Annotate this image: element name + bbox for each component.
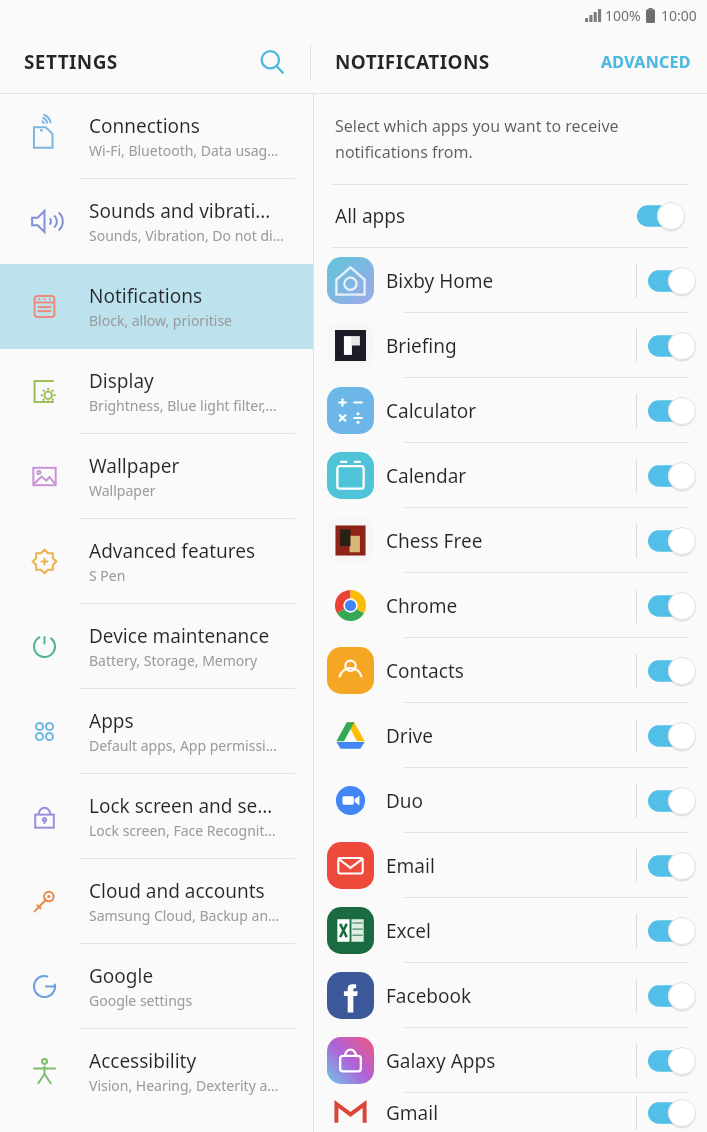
staticText: Calculator <box>386 398 636 424</box>
button[interactable]: Facebook <box>314 963 707 1028</box>
button[interactable]: Google <box>0 944 313 1029</box>
staticText: ADVANCED <box>601 51 691 73</box>
button[interactable]: Toggle notification <box>648 527 696 555</box>
button[interactable]: Toggle notification <box>648 592 696 620</box>
button[interactable]: Toggle notification <box>648 397 696 425</box>
staticText: Calendar <box>386 463 636 489</box>
button[interactable]: Toggle notification <box>648 267 696 295</box>
button[interactable]: Accessibility <box>0 1029 313 1114</box>
button[interactable]: Toggle notification <box>648 462 696 490</box>
staticText: Wallpaper <box>89 481 156 500</box>
button[interactable]: Toggle notification <box>648 1047 696 1075</box>
staticText: S Pen <box>89 566 126 585</box>
staticText: Wi-Fi, Bluetooth, Data usag… <box>89 141 279 160</box>
staticText: NOTIFICATIONS <box>335 49 490 75</box>
button[interactable]: Lock screen and se… <box>0 774 313 859</box>
button[interactable]: Toggle notification <box>648 787 696 815</box>
button[interactable]: Galaxy Apps <box>314 1028 707 1093</box>
staticText: Sounds and vibrati… <box>89 198 271 224</box>
button[interactable]: Display <box>0 349 313 434</box>
button[interactable]: Duo <box>314 768 707 833</box>
button[interactable]: Gmail <box>314 1093 707 1132</box>
button[interactable]: ADVANCED <box>585 37 707 87</box>
staticText: Duo <box>386 788 636 814</box>
button[interactable]: All apps <box>314 185 707 247</box>
staticText: Cloud and accounts <box>89 878 265 904</box>
staticText: Google <box>89 963 154 989</box>
button[interactable]: Calendar <box>314 443 707 508</box>
button[interactable]: Advanced features <box>0 519 313 604</box>
staticText: Drive <box>386 723 636 749</box>
staticText: Wallpaper <box>89 453 180 479</box>
button[interactable]: Drive <box>314 703 707 768</box>
staticText: Accessibility <box>89 1048 197 1074</box>
button[interactable]: Toggle notification <box>648 657 696 685</box>
button[interactable]: Device maintenance <box>0 604 313 689</box>
staticText: Device maintenance <box>89 623 270 649</box>
staticText: Connections <box>89 113 200 139</box>
staticText: Select which apps you want to receive no… <box>335 115 681 163</box>
staticText: Vision, Hearing, Dexterity a… <box>89 1076 279 1095</box>
staticText: Brightness, Blue light filter,… <box>89 396 277 415</box>
staticText: Chrome <box>386 593 636 619</box>
button[interactable]: Sounds and vibrati… <box>0 179 313 264</box>
staticText: Google settings <box>89 991 193 1010</box>
button[interactable]: Email <box>314 833 707 898</box>
staticText: SETTINGS <box>24 49 118 75</box>
staticText: Gmail <box>386 1100 636 1126</box>
button[interactable]: Bixby Home <box>314 248 707 313</box>
staticText: Sounds, Vibration, Do not di… <box>89 226 284 245</box>
button[interactable]: Toggle notification <box>648 722 696 750</box>
staticText: Contacts <box>386 658 636 684</box>
button[interactable]: Apps <box>0 689 313 774</box>
staticText: Advanced features <box>89 538 256 564</box>
button[interactable]: Notifications <box>0 264 313 349</box>
button[interactable]: Cloud and accounts <box>0 859 313 944</box>
button[interactable]: Chrome <box>314 573 707 638</box>
staticText: Notifications <box>89 283 203 309</box>
button[interactable]: Toggle notification <box>648 1099 696 1127</box>
staticText: 100% <box>605 6 641 25</box>
button[interactable]: Briefing <box>314 313 707 378</box>
button[interactable]: Contacts <box>314 638 707 703</box>
button[interactable]: Toggle notification <box>648 982 696 1010</box>
staticText: Block, allow, prioritise <box>89 311 233 330</box>
staticText: Chess Free <box>386 528 636 554</box>
button[interactable]: Calculator <box>314 378 707 443</box>
button[interactable]: Search <box>249 39 295 85</box>
staticText: Lock screen and se… <box>89 793 273 819</box>
staticText: Samsung Cloud, Backup an… <box>89 906 280 925</box>
button[interactable]: Toggle notification <box>648 917 696 945</box>
staticText: Briefing <box>386 333 636 359</box>
button[interactable]: Toggle notification <box>637 202 685 230</box>
button[interactable]: Chess Free <box>314 508 707 573</box>
staticText: Bixby Home <box>386 268 636 294</box>
button[interactable]: Toggle notification <box>648 332 696 360</box>
button[interactable]: Connections <box>0 94 313 179</box>
staticText: Display <box>89 368 154 394</box>
staticText: Galaxy Apps <box>386 1048 636 1074</box>
button[interactable]: Toggle notification <box>648 852 696 880</box>
button[interactable]: Wallpaper <box>0 434 313 519</box>
staticText: Apps <box>89 708 134 734</box>
button[interactable]: Excel <box>314 898 707 963</box>
staticText: Battery, Storage, Memory <box>89 651 258 670</box>
staticText: Facebook <box>386 983 636 1009</box>
staticText: Email <box>386 853 636 879</box>
staticText: Lock screen, Face Recognit… <box>89 821 276 840</box>
staticText: Default apps, App permissi… <box>89 736 277 755</box>
staticText: 10:00 <box>661 6 697 25</box>
staticText: All apps <box>335 203 637 229</box>
staticText: Excel <box>386 918 636 944</box>
